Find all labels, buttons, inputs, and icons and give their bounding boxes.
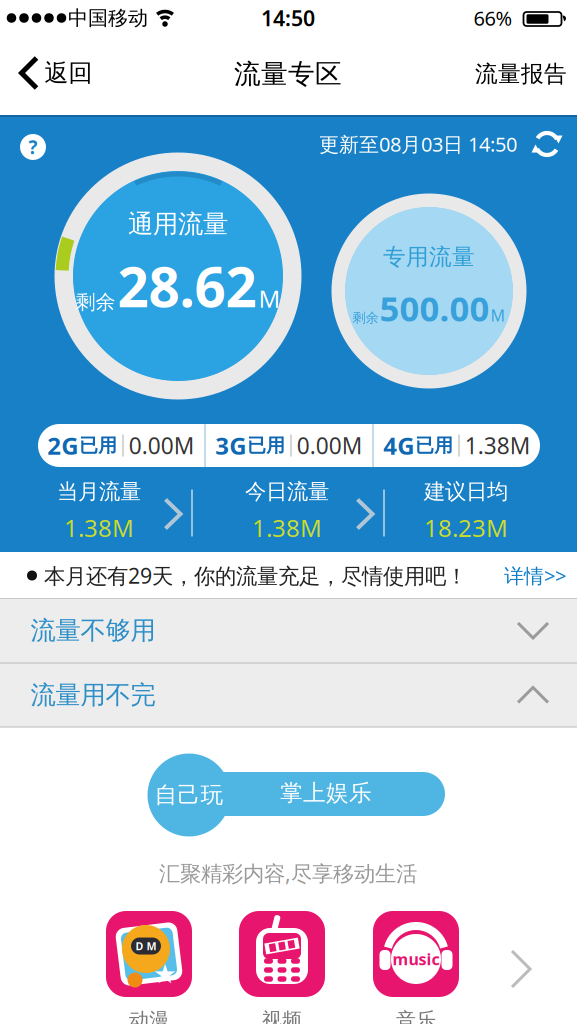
staticText: 中国移动 xyxy=(68,6,148,30)
staticText: 流量报告 xyxy=(475,60,567,88)
staticText: music xyxy=(392,948,439,970)
staticText: 专用流量 xyxy=(383,243,475,271)
staticText: 流量专区 xyxy=(234,58,342,90)
button[interactable]: 返回 xyxy=(21,58,92,88)
staticText: 今日流量 xyxy=(245,478,329,505)
button[interactable]: 今日流量 xyxy=(245,478,329,544)
staticText: 剩余 xyxy=(75,290,115,314)
staticText: 通用流量 xyxy=(128,208,228,239)
staticText: 4G xyxy=(383,430,414,461)
staticText: M xyxy=(490,305,505,326)
staticText: ? xyxy=(28,135,37,159)
button[interactable]: 详情>> xyxy=(504,562,566,589)
staticText: 1.38M xyxy=(252,512,322,544)
button[interactable]: 音乐 xyxy=(373,911,459,997)
staticText: 2G xyxy=(47,430,78,461)
staticText: 当月流量 xyxy=(57,478,141,505)
staticText: 动漫 xyxy=(129,1008,169,1024)
staticText: ★ xyxy=(153,959,177,989)
button[interactable]: 动漫 xyxy=(106,911,192,997)
staticText: 剩余 xyxy=(352,310,378,326)
button[interactable]: 流量不够用 xyxy=(0,599,577,662)
staticText: 视频 xyxy=(262,1008,302,1024)
button[interactable]: 自己玩 xyxy=(147,753,230,836)
staticText: 18.23M xyxy=(424,512,508,544)
staticText: 1.38M xyxy=(64,512,134,544)
staticText: 自己玩 xyxy=(154,781,223,809)
button[interactable]: 刷新 xyxy=(531,129,563,159)
staticText: 已用 xyxy=(247,434,285,457)
staticText: 500.00 xyxy=(379,285,489,331)
button[interactable]: 当月流量 xyxy=(57,478,141,544)
staticText: 14:50 xyxy=(261,4,315,32)
staticText: 0.00M xyxy=(297,430,363,460)
staticText: 流量用不完 xyxy=(30,679,155,710)
button[interactable]: 更多 xyxy=(512,951,530,987)
staticText: 3G xyxy=(215,430,246,461)
staticText: D M xyxy=(135,939,156,953)
staticText: 汇聚精彩内容,尽享移动生活 xyxy=(159,859,417,887)
staticText: 掌上娱乐 xyxy=(280,779,372,807)
staticText: 66% xyxy=(473,5,512,31)
staticText: 详情>> xyxy=(504,562,566,589)
button[interactable]: 帮助 xyxy=(20,134,46,160)
staticText: 1.38M xyxy=(465,430,531,460)
staticText: 本月还有29天，你的流量充足，尽情使用吧！ xyxy=(44,561,467,590)
staticText: 已用 xyxy=(415,434,453,457)
staticText: 0.00M xyxy=(129,430,195,460)
staticText: 流量不够用 xyxy=(30,615,155,646)
staticText: 28.62 xyxy=(117,250,256,322)
button[interactable] xyxy=(189,772,445,816)
staticText: M xyxy=(258,282,280,314)
staticText: 已用 xyxy=(79,434,117,457)
staticText: 音乐 xyxy=(396,1008,436,1024)
button[interactable]: 流量报告 xyxy=(475,60,567,88)
staticText: 更新至08月03日 14:50 xyxy=(319,131,517,157)
staticText: 返回 xyxy=(44,58,92,88)
staticText: 建议日均 xyxy=(424,478,508,505)
button[interactable]: 流量用不完 xyxy=(0,663,577,726)
button[interactable]: 视频 xyxy=(239,911,325,997)
